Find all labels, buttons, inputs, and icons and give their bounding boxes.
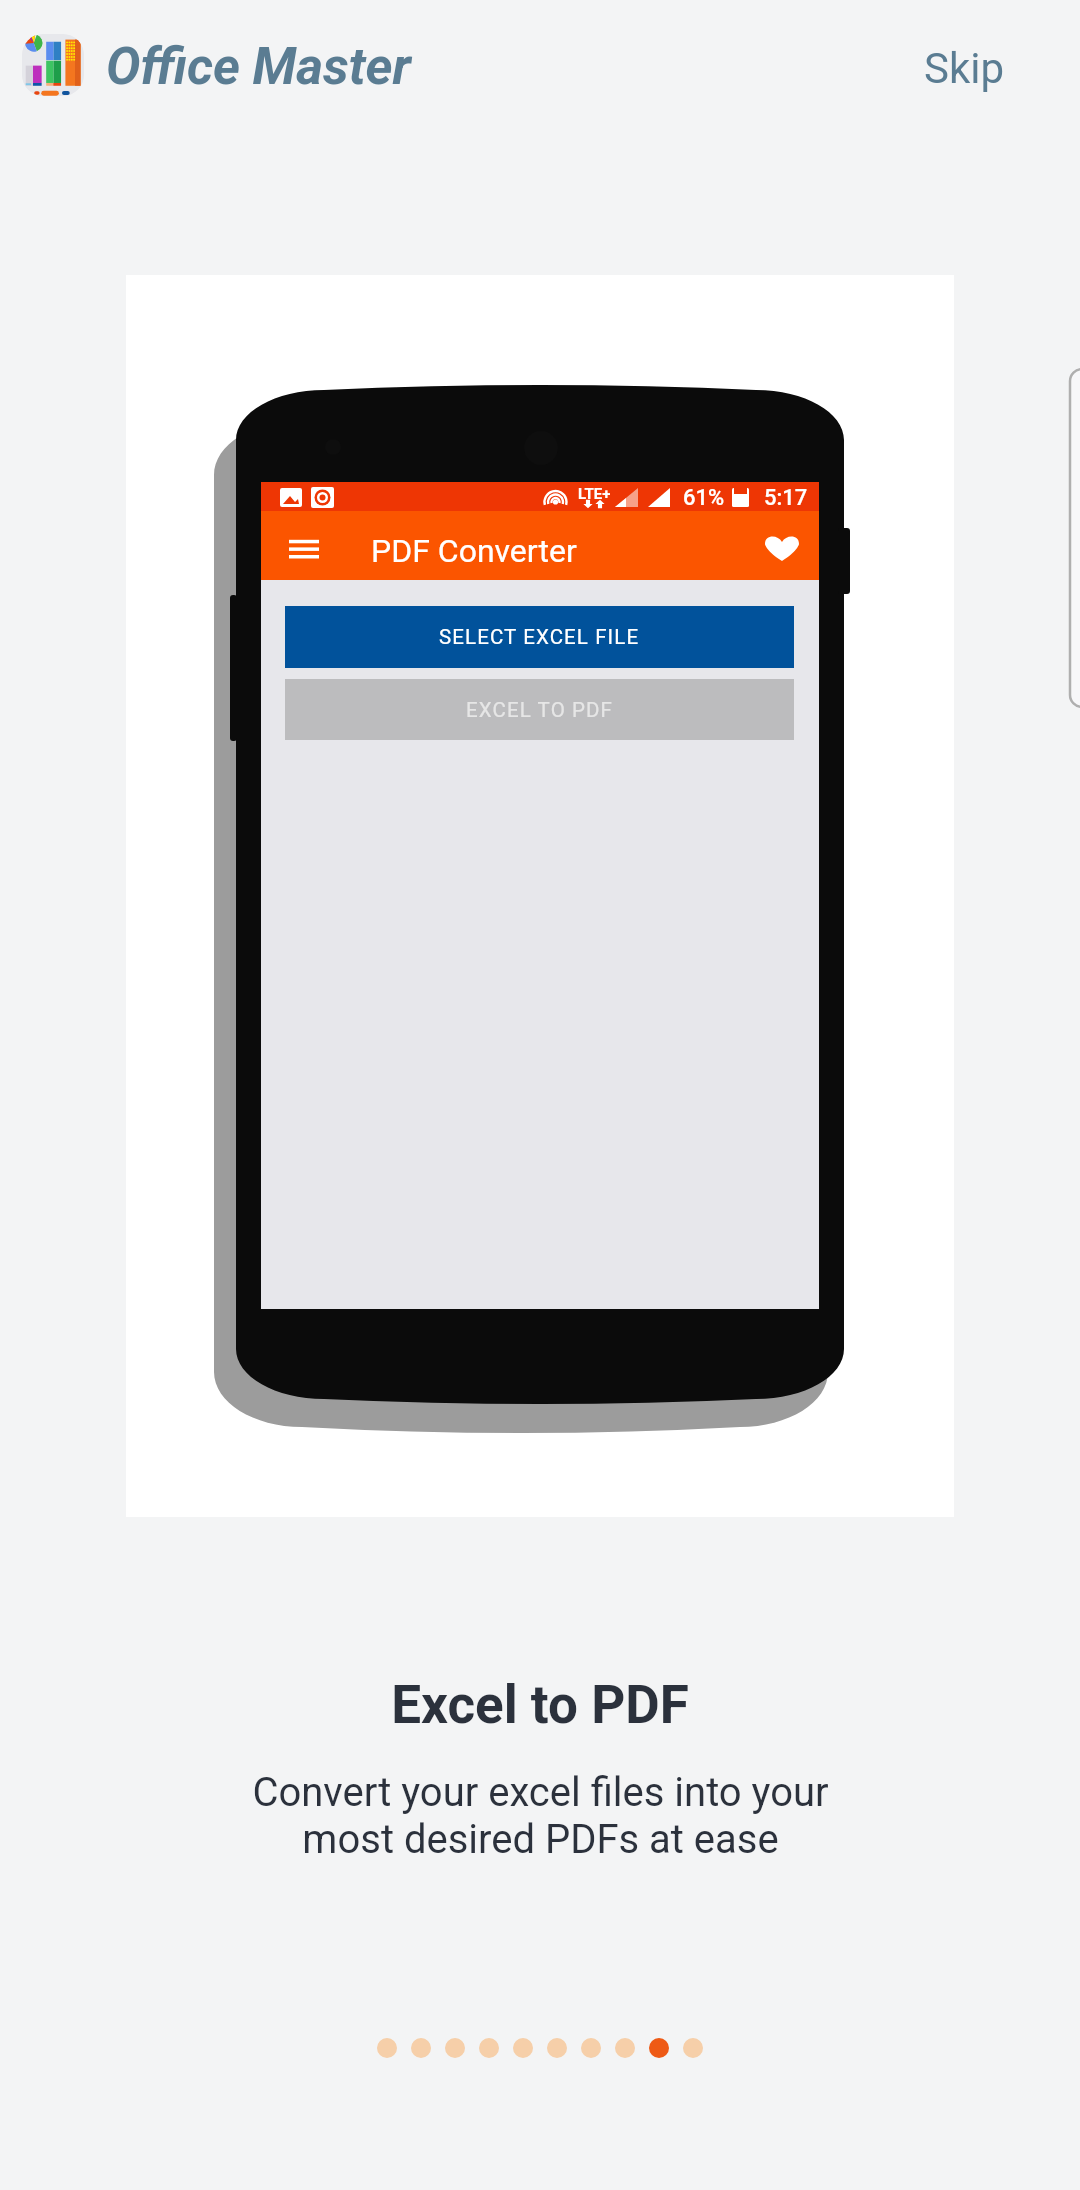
button[interactable]: Next page xyxy=(1069,368,1080,708)
staticText: Skip xyxy=(924,44,1005,93)
staticText: SELECT EXCEL FILE xyxy=(439,625,640,649)
button[interactable]: Go to page 1 xyxy=(377,2038,397,2058)
other: Office Master app icon xyxy=(22,34,84,96)
button[interactable]: Go to page 3 xyxy=(445,2038,465,2058)
button[interactable]: Go to page 10 xyxy=(683,2038,703,2058)
button[interactable]: Go to page 5 xyxy=(513,2038,533,2058)
button[interactable]: Go to page 6 xyxy=(547,2038,567,2058)
staticText: LTE+ xyxy=(578,485,611,503)
staticText: Excel to PDF xyxy=(391,1674,689,1736)
button[interactable]: Go to page 8 xyxy=(615,2038,635,2058)
staticText: Office Master xyxy=(106,36,411,96)
button[interactable]: Go to page 9 xyxy=(649,2038,669,2058)
button[interactable]: Excel to PDF screenshot xyxy=(126,275,954,1517)
button[interactable]: Skip xyxy=(896,14,1032,122)
staticText: EXCEL TO PDF xyxy=(466,698,614,722)
button[interactable]: Go to page 2 xyxy=(411,2038,431,2058)
staticText: 5:17 xyxy=(764,485,808,511)
button[interactable]: Go to page 7 xyxy=(581,2038,601,2058)
staticText: 61% xyxy=(683,485,725,511)
button[interactable]: Go to page 4 xyxy=(479,2038,499,2058)
button[interactable]: Office Master app icon xyxy=(0,0,433,136)
staticText: PDF Converter xyxy=(371,532,577,570)
staticText: Convert your excel files into your most … xyxy=(252,1769,829,1863)
